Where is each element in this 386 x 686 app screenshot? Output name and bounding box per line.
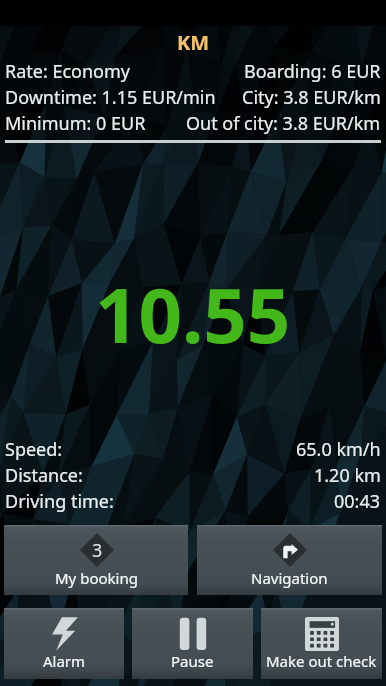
staticText: Alarm [43, 651, 86, 671]
staticText: 65.0 km/h [296, 437, 381, 462]
staticText: KM [177, 29, 210, 56]
staticText: Driving time: [5, 489, 114, 514]
staticText: Pause [171, 651, 214, 671]
button[interactable]: Make out check [261, 608, 382, 679]
staticText: Boarding: 6 EUR [244, 59, 381, 84]
staticText: City: 3.8 EUR/km [242, 85, 381, 110]
button[interactable]: 3 [4, 525, 188, 595]
staticText: Make out check [266, 651, 377, 671]
staticText: My booking [55, 568, 138, 588]
staticText: Minimum: 0 EUR [5, 111, 146, 136]
staticText: Speed: [5, 437, 63, 462]
staticText: Distance: [5, 463, 83, 488]
staticText: 00:43 [334, 489, 381, 514]
staticText: 10.55 [95, 262, 291, 366]
staticText: Downtime: 1.15 EUR/min [5, 85, 216, 110]
staticText: 3 [92, 538, 103, 563]
button[interactable]: Pause [132, 608, 253, 679]
staticText: Rate: Economy [5, 59, 131, 84]
staticText: Navigation [251, 568, 328, 588]
staticText: Out of city: 3.8 EUR/km [186, 111, 381, 136]
staticText: 1.20 km [314, 463, 381, 488]
button[interactable]: Alarm [4, 608, 124, 679]
button[interactable]: Navigation [197, 525, 382, 595]
